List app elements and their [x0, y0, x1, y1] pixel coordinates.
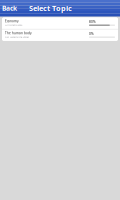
staticText: The human body — [5, 31, 32, 35]
button[interactable]: Back — [0, 0, 19, 17]
button[interactable]: Economy — [2, 17, 118, 29]
staticText: 80% — [89, 19, 96, 24]
staticText: 0% — [89, 31, 94, 36]
staticText: Select Topic — [29, 3, 72, 13]
staticText: Economy — [5, 19, 19, 23]
staticText: Back — [2, 4, 17, 13]
button[interactable]: The human body — [2, 29, 118, 41]
staticText: Wirtschaftslehre — [5, 23, 22, 26]
staticText: Der Menschliche Körper — [5, 35, 29, 38]
